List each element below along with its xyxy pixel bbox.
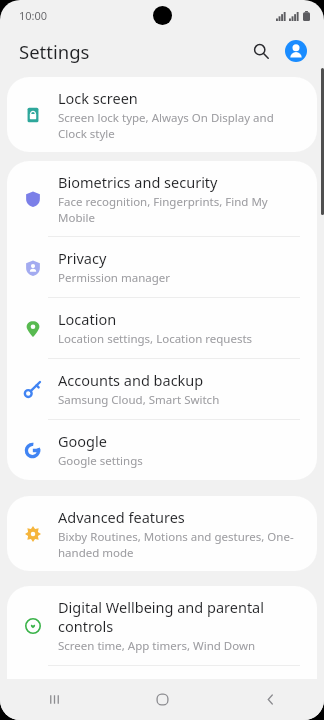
staticText: Biometrics and security — [58, 172, 218, 192]
button[interactable]: Account — [280, 35, 312, 67]
staticText: Settings — [19, 39, 90, 64]
staticText: Location settings, Location requests — [58, 331, 253, 347]
button[interactable]: Lock screen — [7, 77, 317, 152]
button[interactable]: Accounts and backup — [7, 359, 317, 419]
staticText: Permission manager — [58, 270, 171, 286]
button[interactable]: Search — [245, 35, 277, 67]
staticText: Battery, Storage, Memory, Security — [58, 699, 245, 709]
staticText: Screen lock type, Always On Display and … — [58, 110, 303, 141]
staticText: Face recognition, Fingerprints, Find My … — [58, 194, 303, 225]
staticText: Privacy — [58, 248, 107, 268]
staticText: Google settings — [58, 453, 143, 469]
staticText: Samsung Cloud, Smart Switch — [58, 392, 220, 408]
staticText: Screen time, App timers, Wind Down — [58, 638, 256, 654]
button[interactable]: Back — [216, 679, 324, 720]
button[interactable]: Privacy — [7, 237, 317, 297]
button[interactable]: Digital Wellbeing and parental controls — [7, 586, 317, 665]
button[interactable]: Location — [7, 298, 317, 358]
button[interactable]: Advanced features — [7, 496, 317, 571]
staticText: 10:00 — [19, 8, 48, 23]
staticText: Bixby Routines, Motions and gestures, On… — [58, 529, 303, 560]
button[interactable]: Recents — [0, 679, 108, 720]
button[interactable]: Home — [108, 679, 216, 720]
staticText: Location — [58, 309, 117, 329]
button[interactable]: Biometrics and security — [7, 161, 317, 236]
staticText: Advanced features — [58, 507, 185, 527]
staticText: Digital Wellbeing and parental controls — [58, 597, 303, 636]
staticText: Lock screen — [58, 88, 138, 108]
staticText: Google — [58, 431, 107, 451]
staticText: Device care — [58, 677, 136, 697]
button[interactable]: Device care — [7, 666, 317, 720]
staticText: Accounts and backup — [58, 370, 204, 390]
button[interactable]: Google — [7, 420, 317, 480]
